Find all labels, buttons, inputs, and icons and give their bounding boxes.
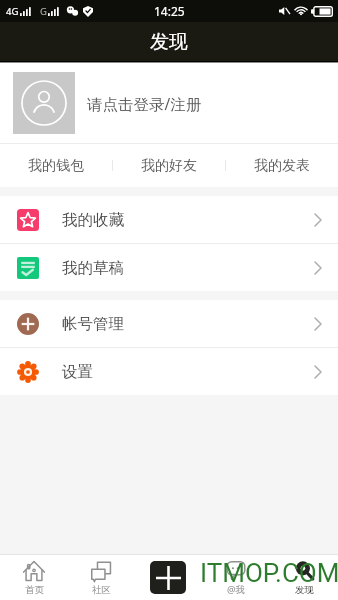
staticText: 首页 [25,584,44,596]
button[interactable]: 请点击登录/注册 [0,63,338,143]
staticText: 发现 [295,584,314,596]
staticText: 我的好友 [141,157,197,175]
staticText: 设置 [62,362,93,382]
button[interactable]: 设置 [0,348,338,395]
staticText: 帐号管理 [62,314,124,334]
staticText: 我的发表 [254,157,310,175]
staticText: G [40,5,47,18]
button[interactable]: 帐号管理 [0,300,338,347]
button[interactable]: 发现 [270,555,338,600]
button[interactable]: 首页 [0,555,67,600]
staticText: @我 [227,583,246,596]
staticText: 14:25 [154,3,185,19]
staticText: 社区 [92,584,111,596]
button[interactable]: 我的发表 [226,144,338,187]
button[interactable]: 我的收藏 [0,196,338,243]
button[interactable]: 发布 [134,555,202,600]
button[interactable]: 社区 [67,555,134,600]
staticText: 我的钱包 [28,157,84,175]
button[interactable]: 我的钱包 [0,144,112,187]
staticText: 发现 [150,30,188,54]
staticText: ITMOP.COM [200,558,338,588]
button[interactable]: 我的草稿 [0,244,338,291]
staticText: 我的收藏 [62,210,124,230]
staticText: 我的草稿 [62,258,124,278]
staticText: 请点击登录/注册 [87,93,202,114]
staticText: 4G [6,5,19,18]
button[interactable]: @我 [202,555,270,600]
button[interactable]: 我的好友 [113,144,225,187]
